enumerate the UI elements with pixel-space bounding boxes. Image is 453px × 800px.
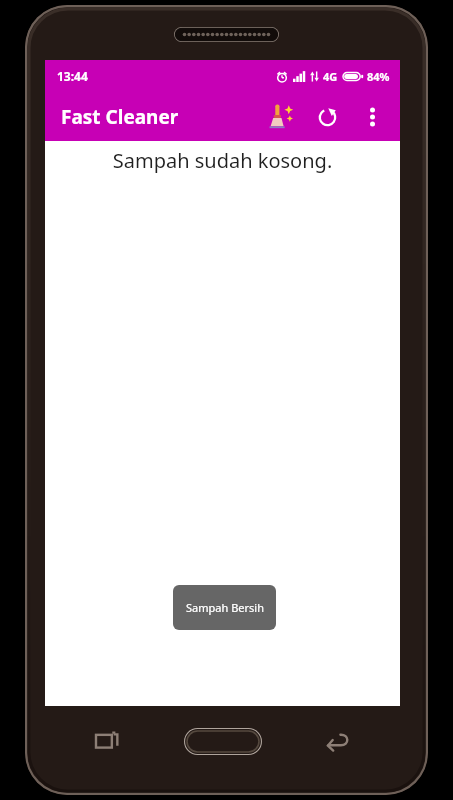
button[interactable]: Sampah Bersih [173, 585, 276, 630]
button[interactable]: Back [318, 721, 358, 761]
staticText: Sampah sudah kosong. [45, 147, 400, 174]
button[interactable]: More options [350, 95, 394, 139]
staticText: 13:44 [57, 68, 88, 84]
staticText: Sampah Bersih [186, 600, 264, 615]
staticText: 4G [323, 69, 338, 84]
button[interactable]: Clean [258, 94, 304, 140]
button[interactable]: Recent apps [87, 721, 127, 761]
staticText: 84% [367, 69, 390, 84]
button[interactable]: Home [184, 728, 262, 755]
button[interactable]: Refresh [304, 94, 350, 140]
staticText: Fast Cleaner [61, 104, 179, 130]
